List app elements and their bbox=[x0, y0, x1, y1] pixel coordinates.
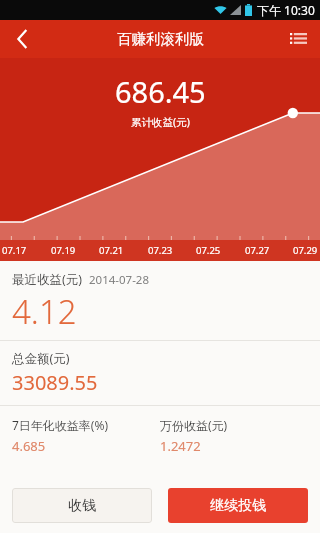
staticText: 07.29 bbox=[293, 244, 318, 257]
staticText: 收钱 bbox=[68, 497, 96, 515]
staticText: 2014-07-28 bbox=[89, 272, 150, 288]
staticText: 百赚利滚利版 bbox=[117, 30, 204, 48]
staticText: 继续投钱 bbox=[210, 497, 266, 515]
staticText: 总金额(元) bbox=[12, 350, 70, 367]
staticText: 4.12 bbox=[12, 289, 77, 334]
staticText: 33089.55 bbox=[12, 369, 98, 396]
staticText: 4.685 bbox=[12, 437, 46, 455]
staticText: 07.19 bbox=[51, 244, 76, 257]
button[interactable]: 收钱 bbox=[12, 488, 152, 523]
staticText: 1.2472 bbox=[160, 437, 201, 455]
staticText: 7日年化收益率(%) bbox=[12, 417, 109, 433]
button[interactable]: Back bbox=[0, 20, 44, 58]
staticText: 07.17 bbox=[2, 244, 27, 257]
staticText: 07.21 bbox=[99, 244, 124, 257]
staticText: 686.45 bbox=[115, 72, 206, 111]
staticText: 累计收益(元) bbox=[131, 115, 190, 129]
staticText: 07.23 bbox=[148, 244, 173, 257]
staticText: 万份收益(元) bbox=[160, 417, 228, 433]
staticText: 最近收益(元) bbox=[12, 271, 83, 288]
staticText: 07.25 bbox=[196, 244, 221, 257]
staticText: 07.27 bbox=[245, 244, 270, 257]
button[interactable]: 继续投钱 bbox=[168, 488, 308, 523]
button[interactable]: Menu bbox=[276, 20, 320, 58]
staticText: 下午 10:30 bbox=[257, 2, 315, 18]
